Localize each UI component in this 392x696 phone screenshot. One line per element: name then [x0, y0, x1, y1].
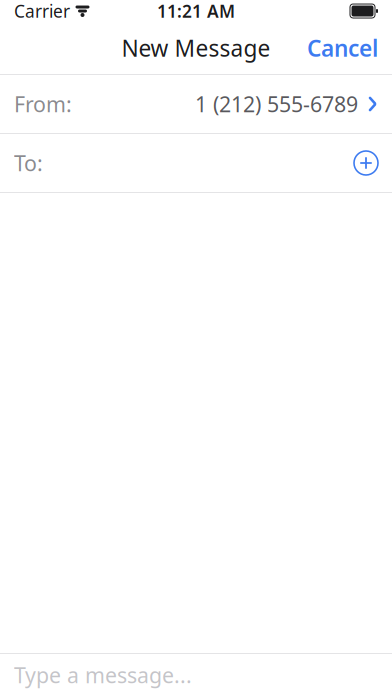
staticText: 11:21 AM	[157, 0, 235, 22]
button[interactable]: Add recipient	[344, 141, 388, 185]
staticText: Cancel	[307, 33, 378, 63]
button[interactable]: From:	[0, 75, 392, 133]
staticText: To:	[14, 149, 43, 177]
staticText: New Message	[121, 33, 270, 63]
staticText: 1 (212) 555-6789	[195, 90, 358, 118]
staticText: Carrier	[14, 0, 70, 22]
staticText: From:	[14, 90, 72, 118]
staticText: Type a message...	[14, 661, 192, 689]
button[interactable]: Type a message...	[0, 654, 392, 696]
button[interactable]: Cancel	[293, 26, 392, 70]
